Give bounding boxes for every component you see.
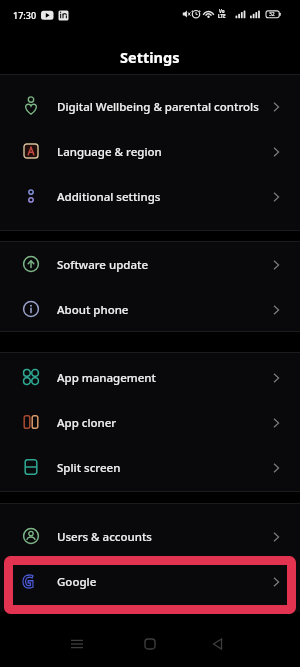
staticText: 32	[269, 11, 275, 18]
button[interactable]: Split screen	[0, 445, 300, 490]
button[interactable]	[198, 624, 238, 664]
staticText: Digital Wellbeing & parental controls	[57, 99, 259, 115]
button[interactable]: Software update	[0, 242, 300, 287]
staticText: G	[22, 570, 35, 593]
staticText: 17:30	[13, 9, 37, 21]
staticText: Settings	[120, 47, 180, 67]
staticText: Google	[57, 574, 97, 590]
staticText: Split screen	[57, 460, 121, 476]
button[interactable]: Additional settings	[0, 174, 300, 219]
staticText: Language & region	[57, 144, 162, 160]
staticText: App management	[57, 370, 156, 386]
button[interactable]	[130, 624, 170, 664]
button[interactable]: Language & region	[0, 129, 300, 174]
staticText: Additional settings	[57, 189, 161, 205]
button[interactable]: About phone	[0, 287, 300, 332]
staticText: App cloner	[57, 415, 117, 431]
staticText: Software update	[57, 257, 148, 273]
button[interactable]: G	[0, 559, 300, 604]
button[interactable]: App management	[0, 355, 300, 400]
staticText: Users & accounts	[57, 529, 152, 545]
staticText: LTE	[218, 13, 226, 19]
button[interactable]	[57, 624, 97, 664]
button[interactable]: Users & accounts	[0, 514, 300, 559]
staticText: Vo	[219, 8, 225, 14]
button[interactable]: App cloner	[0, 400, 300, 445]
staticText: About phone	[57, 302, 129, 318]
button[interactable]: Digital Wellbeing & parental controls	[0, 84, 300, 129]
